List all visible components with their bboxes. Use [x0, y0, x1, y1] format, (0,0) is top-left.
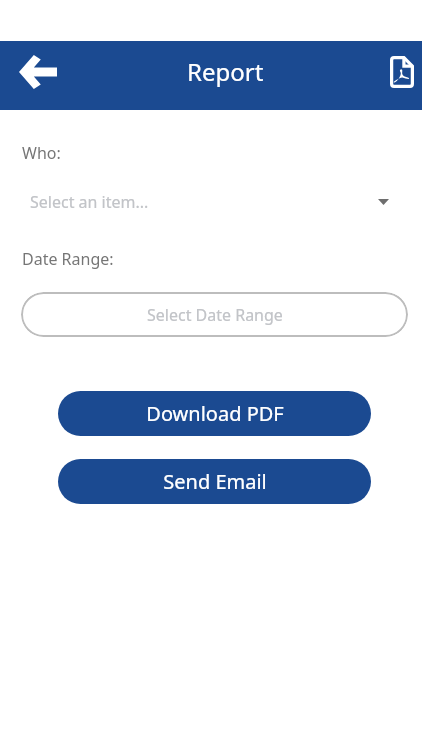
button[interactable]: Select an item... [0, 187, 422, 217]
staticText: Send Email [163, 468, 267, 495]
button[interactable]: Export PDF [378, 48, 422, 96]
staticText: Select an item... [30, 191, 149, 213]
staticText: Select Date Range [147, 304, 283, 326]
staticText: Date Range: [22, 248, 114, 270]
staticText: Who: [22, 142, 61, 164]
staticText: Download PDF [146, 400, 284, 427]
button[interactable]: Download PDF [58, 391, 371, 436]
staticText: Report [187, 55, 264, 88]
button[interactable]: Send Email [58, 459, 371, 504]
button[interactable]: Back [13, 48, 63, 96]
button[interactable]: Select Date Range [21, 292, 408, 337]
